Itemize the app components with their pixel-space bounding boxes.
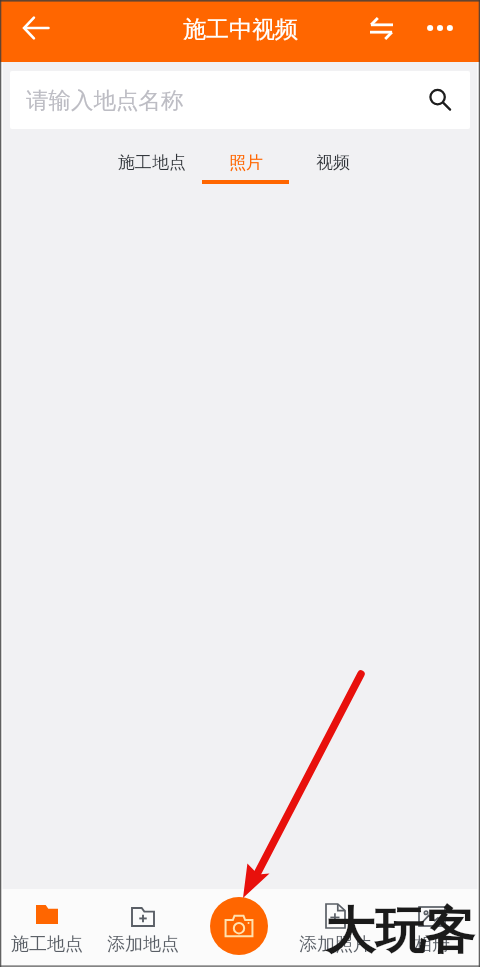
button[interactable]: 请输入地点名称 [10, 71, 470, 129]
button[interactable]: Search [422, 82, 458, 118]
button[interactable]: Back [14, 6, 58, 50]
button[interactable]: Switch view [359, 6, 403, 50]
staticText: 添加地点 [107, 933, 179, 956]
button[interactable]: 相册 [384, 889, 480, 967]
staticText: 施工地点 [11, 933, 83, 956]
button[interactable]: 施工地点 [0, 889, 95, 967]
button[interactable]: Take photo [210, 897, 268, 955]
button[interactable]: 添加照片 [287, 889, 383, 967]
button[interactable]: 视频 [283, 138, 383, 193]
staticText: 大玩客 [325, 900, 475, 963]
staticText: 照片 [229, 152, 263, 173]
staticText: 施工地点 [118, 152, 186, 173]
button[interactable]: More options [418, 6, 462, 50]
button[interactable]: 添加地点 [95, 889, 191, 967]
button[interactable]: 施工地点 [102, 138, 202, 193]
staticText: 相册 [414, 933, 450, 956]
staticText: 请输入地点名称 [26, 86, 184, 114]
button[interactable]: 照片 [195, 138, 295, 193]
staticText: 视频 [316, 152, 350, 173]
staticText: 添加照片 [299, 933, 371, 956]
staticText: 施工中视频 [183, 15, 298, 44]
